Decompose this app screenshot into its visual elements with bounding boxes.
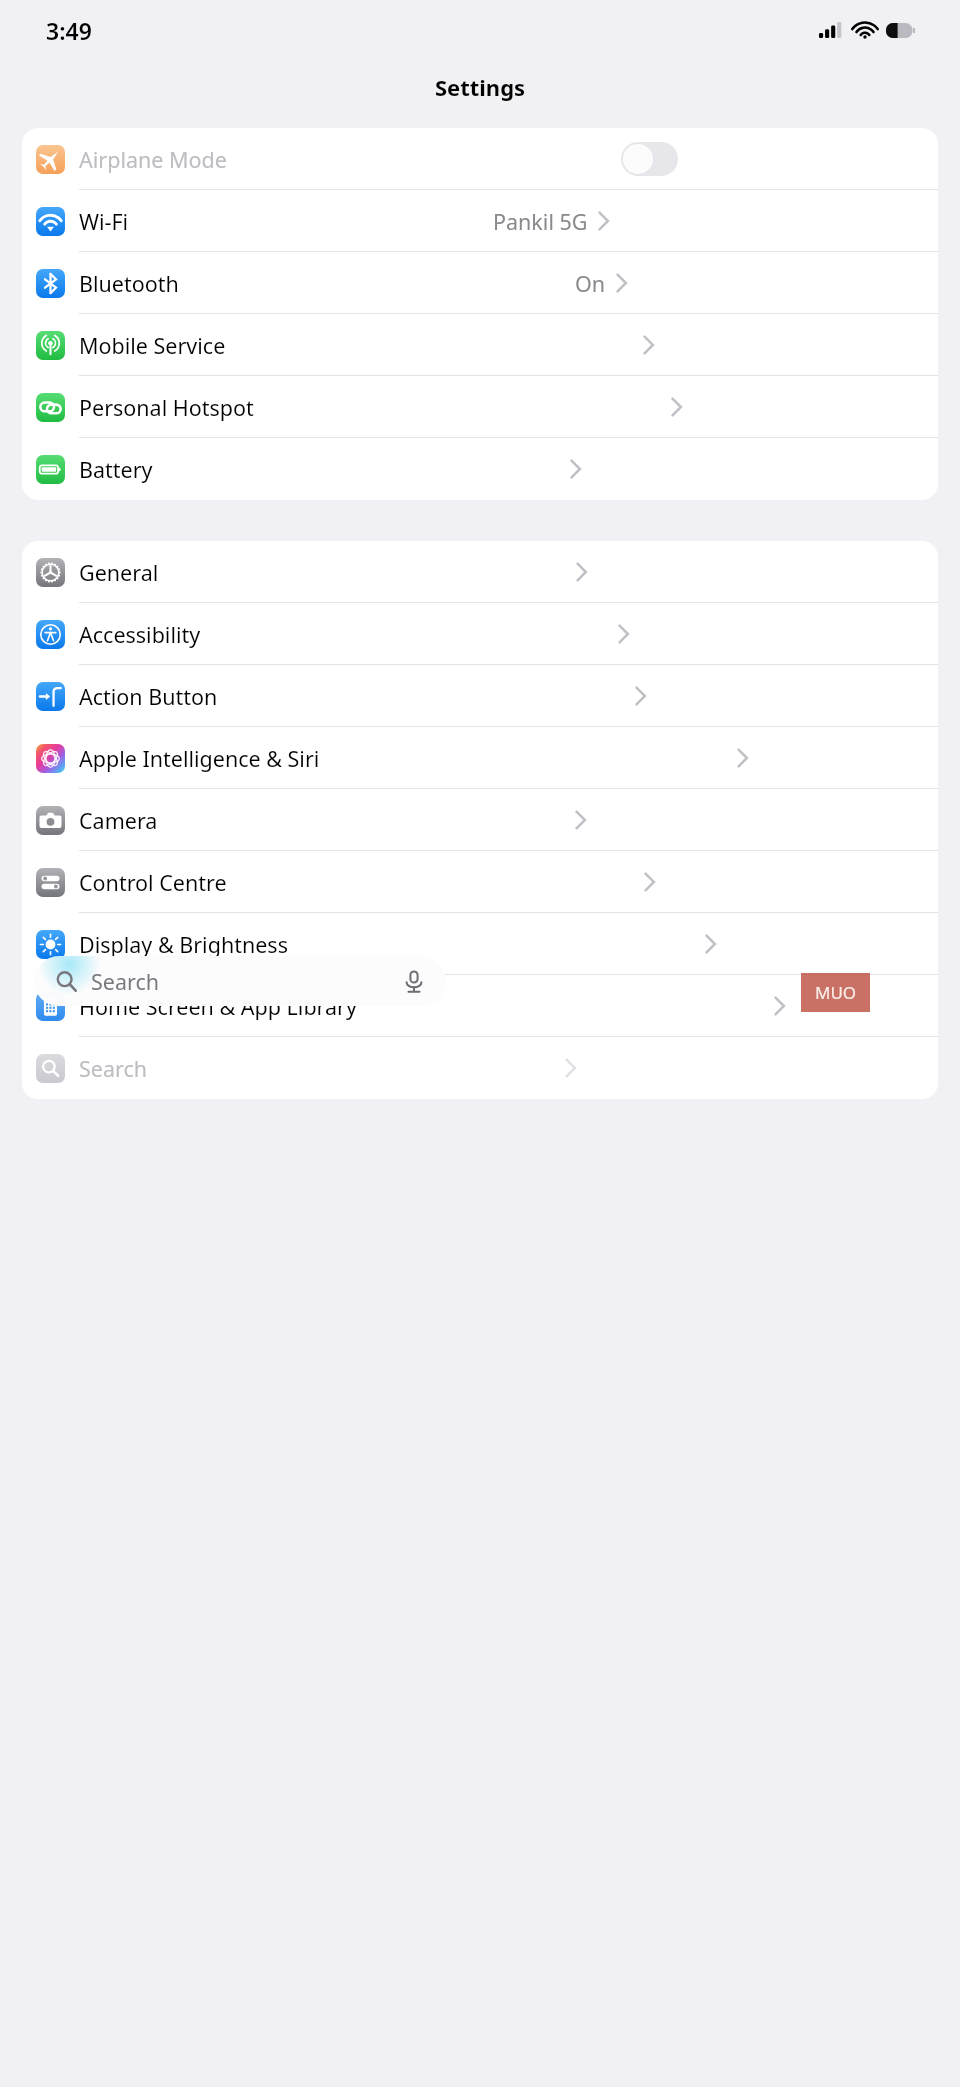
staticText: Personal Hotspot: [79, 393, 254, 422]
button[interactable]: Accessibility: [22, 603, 938, 665]
staticText: Bluetooth: [79, 269, 179, 298]
staticText: Control Centre: [79, 868, 227, 897]
button[interactable]: Battery: [22, 438, 938, 500]
button[interactable]: Personal Hotspot: [22, 376, 938, 438]
staticText: Airplane Mode: [79, 145, 227, 174]
button[interactable]: Search: [34, 956, 446, 1006]
staticText: Apple Intelligence & Siri: [79, 744, 320, 773]
staticText: Search: [91, 967, 160, 996]
button[interactable]: Airplane Mode: [22, 128, 938, 190]
staticText: Search: [79, 1054, 148, 1083]
staticText: Battery: [79, 455, 153, 484]
staticText: MUO: [815, 981, 857, 1004]
button[interactable]: Action Button: [22, 665, 938, 727]
staticText: Camera: [79, 806, 158, 835]
staticText: On: [575, 269, 606, 298]
button[interactable]: Wi-Fi: [22, 190, 938, 252]
staticText: Settings: [0, 72, 960, 102]
button[interactable]: Search: [22, 1037, 938, 1099]
staticText: General: [79, 558, 159, 587]
staticText: Accessibility: [79, 620, 201, 649]
staticText: Wi-Fi: [79, 207, 129, 236]
button[interactable]: Control Centre: [22, 851, 938, 913]
staticText: Mobile Service: [79, 331, 226, 360]
button[interactable]: Airplane Mode toggle: [621, 142, 678, 176]
button[interactable]: Camera: [22, 789, 938, 851]
button[interactable]: Display & Brightness: [22, 913, 938, 975]
button[interactable]: General: [22, 541, 938, 603]
staticText: 3:49: [46, 15, 92, 46]
staticText: Display & Brightness: [79, 930, 288, 959]
staticText: Pankil 5G: [493, 207, 588, 236]
staticText: Home Screen & App Library: [79, 992, 357, 1021]
staticText: Action Button: [79, 682, 218, 711]
button[interactable]: Apple Intelligence & Siri: [22, 727, 938, 789]
button[interactable]: Bluetooth: [22, 252, 938, 314]
button[interactable]: Home Screen & App Library: [22, 975, 938, 1037]
button[interactable]: Mobile Service: [22, 314, 938, 376]
button[interactable]: Voice search: [402, 970, 426, 994]
